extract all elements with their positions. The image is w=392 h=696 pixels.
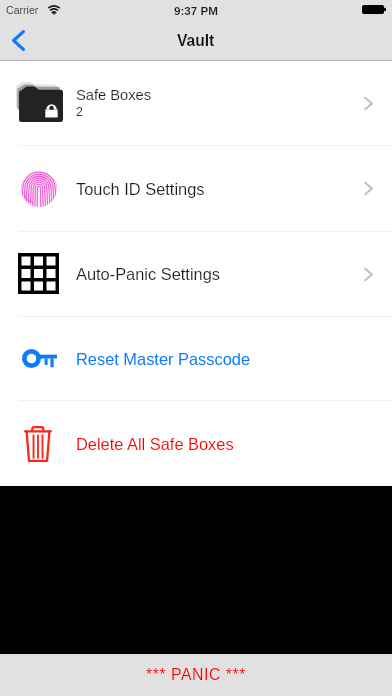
staticText: Delete All Safe Boxes xyxy=(76,435,234,453)
staticText: 9:37 PM xyxy=(174,4,218,17)
staticText: Safe Boxes xyxy=(76,87,152,103)
staticText: Carrier xyxy=(6,4,39,16)
staticText: Reset Master Passcode xyxy=(76,350,250,368)
staticText: Auto-Panic Settings xyxy=(76,265,220,283)
button[interactable]: Touch ID Settings xyxy=(0,146,392,231)
button[interactable]: Back xyxy=(0,20,46,61)
staticText: *** PANIC *** xyxy=(146,666,246,684)
button[interactable]: Reset Master Passcode xyxy=(0,317,392,400)
staticText: Touch ID Settings xyxy=(76,180,205,198)
button[interactable]: Auto-Panic Settings xyxy=(0,232,392,316)
staticText: Vault xyxy=(177,32,215,49)
staticText: 2 xyxy=(76,105,83,119)
button[interactable]: *** PANIC *** xyxy=(0,654,392,696)
button[interactable]: Safe Boxes xyxy=(0,61,392,145)
button[interactable]: Delete All Safe Boxes xyxy=(0,401,392,486)
